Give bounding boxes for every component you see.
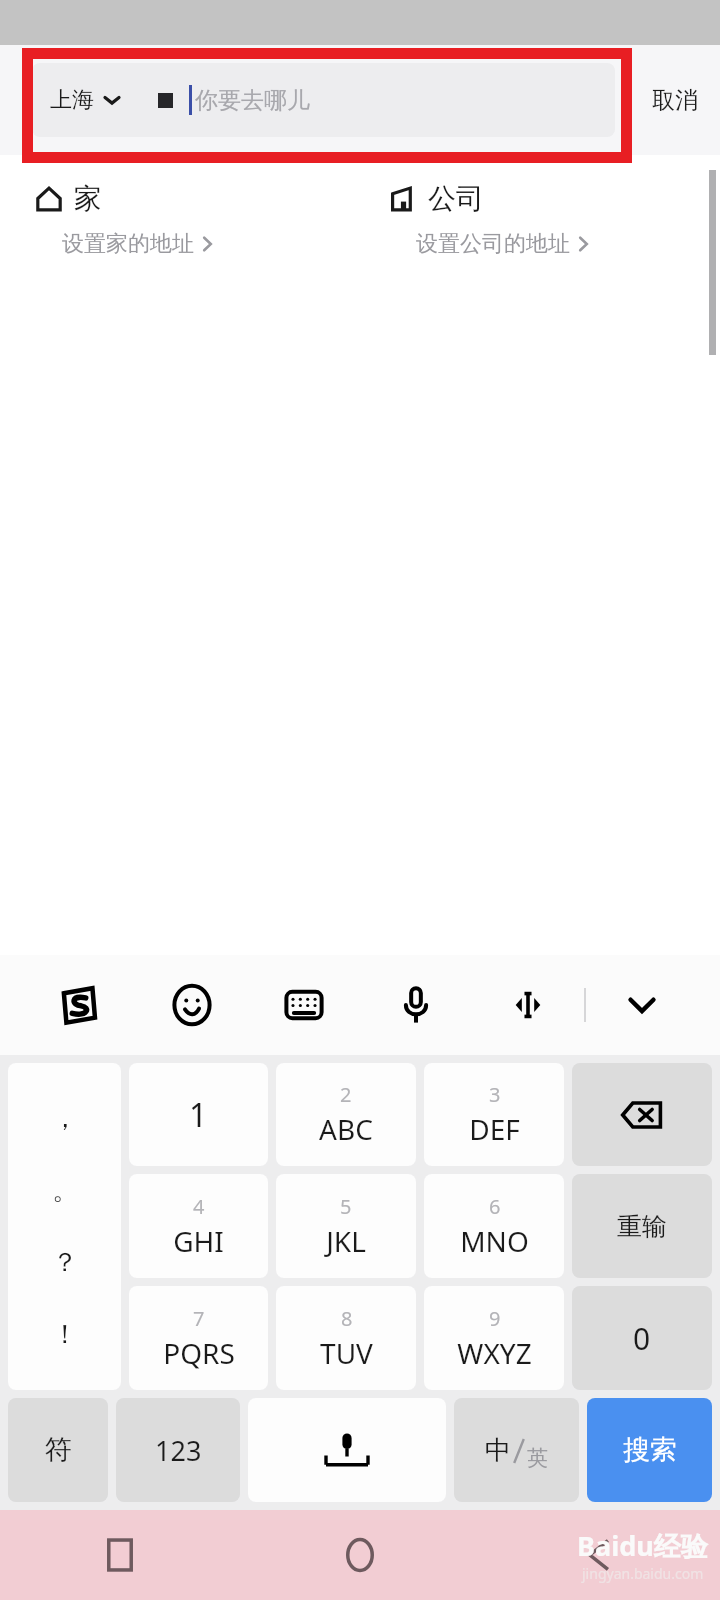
button[interactable]: 3: [424, 1063, 564, 1166]
button[interactable]: 2: [276, 1063, 416, 1166]
staticText: 你要去哪儿: [195, 86, 310, 115]
button[interactable]: Back: [480, 1510, 720, 1600]
staticText: 0: [633, 1318, 651, 1359]
button[interactable]: Space / voice: [248, 1398, 446, 1502]
staticText: ABC: [319, 1110, 373, 1148]
staticText: 6: [489, 1193, 501, 1220]
staticText: 中: [485, 1434, 511, 1467]
staticText: 2: [340, 1081, 352, 1108]
button[interactable]: Sogou input: [22, 955, 135, 1055]
button[interactable]: 7: [129, 1286, 268, 1390]
staticText: 家: [74, 181, 102, 216]
button[interactable]: 9: [424, 1286, 564, 1390]
staticText: 7: [193, 1305, 205, 1332]
button[interactable]: 上海: [32, 63, 615, 137]
button[interactable]: 符: [8, 1398, 108, 1502]
button[interactable]: Home: [240, 1510, 480, 1600]
staticText: 5: [340, 1193, 352, 1220]
button[interactable]: 4: [129, 1174, 268, 1278]
staticText: Baidu经验: [577, 1527, 708, 1564]
button[interactable]: 5: [276, 1174, 416, 1278]
button[interactable]: 取消: [644, 76, 706, 125]
staticText: 设置家的地址: [62, 230, 194, 258]
button[interactable]: Recent apps: [0, 1510, 240, 1600]
staticText: jingyan.baidu.com: [582, 1564, 704, 1583]
staticText: 英: [527, 1445, 548, 1471]
button[interactable]: 中: [454, 1398, 579, 1502]
button[interactable]: 6: [424, 1174, 564, 1278]
staticText: 3: [489, 1081, 501, 1108]
button[interactable]: 1: [129, 1063, 268, 1166]
staticText: 公司: [428, 181, 484, 216]
staticText: 搜索: [623, 1433, 677, 1467]
staticText: PQRS: [163, 1334, 235, 1372]
button[interactable]: Voice input: [360, 955, 472, 1055]
staticText: 4: [193, 1193, 205, 1220]
button[interactable]: Keyboard layout: [248, 955, 360, 1055]
staticText: 9: [489, 1305, 501, 1332]
staticText: 设置公司的地址: [416, 230, 570, 258]
button[interactable]: 123: [116, 1398, 240, 1502]
staticText: DEF: [469, 1110, 520, 1148]
button[interactable]: 搜索: [587, 1398, 712, 1502]
button[interactable]: 8: [276, 1286, 416, 1390]
button[interactable]: Emoji: [135, 955, 248, 1055]
button[interactable]: 0: [572, 1286, 712, 1390]
staticText: 。: [52, 1174, 78, 1207]
staticText: ，: [52, 1102, 78, 1135]
staticText: 上海: [50, 86, 94, 114]
button[interactable]: Delete: [572, 1063, 712, 1166]
button[interactable]: 公司: [368, 155, 706, 303]
staticText: 123: [155, 1432, 202, 1469]
button[interactable]: 家: [14, 155, 352, 303]
staticText: 1: [189, 1093, 208, 1137]
staticText: 符: [45, 1433, 72, 1467]
button[interactable]: 重输: [572, 1174, 712, 1278]
staticText: ！: [52, 1318, 78, 1351]
staticText: 取消: [652, 86, 698, 115]
button[interactable]: ，: [8, 1063, 121, 1390]
staticText: TUV: [320, 1334, 373, 1372]
staticText: MNO: [460, 1222, 529, 1260]
staticText: 8: [341, 1305, 353, 1332]
button[interactable]: Move cursor: [472, 955, 584, 1055]
staticText: ？: [52, 1246, 78, 1279]
staticText: GHI: [173, 1222, 224, 1260]
staticText: 重输: [617, 1211, 667, 1242]
button[interactable]: Hide keyboard: [586, 955, 698, 1055]
staticText: WXYZ: [457, 1334, 532, 1372]
staticText: JKL: [326, 1222, 366, 1260]
